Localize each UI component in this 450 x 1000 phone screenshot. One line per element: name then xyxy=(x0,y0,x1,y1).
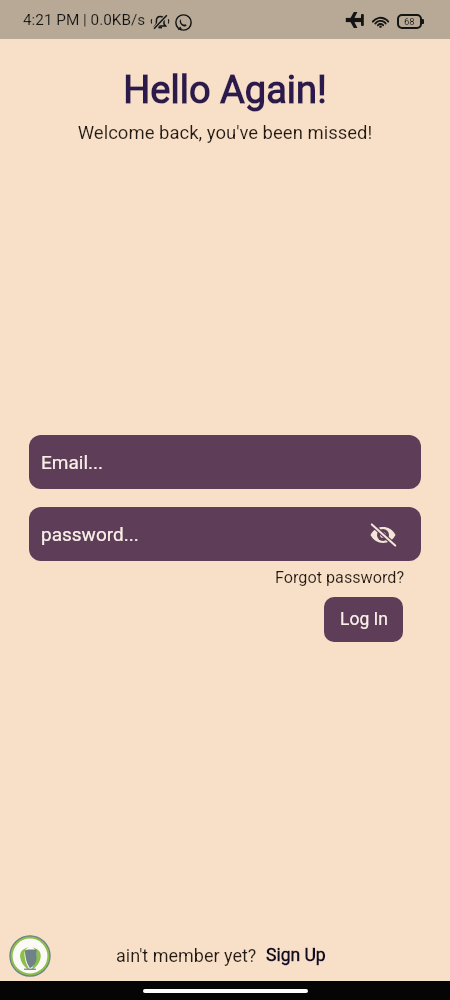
staticText: Forgot password? xyxy=(275,568,405,587)
button[interactable]: password... xyxy=(29,507,421,561)
button[interactable]: Sign Up xyxy=(266,945,326,966)
staticText: Hello Again! xyxy=(0,68,450,113)
staticText: Log In xyxy=(340,609,388,630)
staticText: Welcome back, you've been missed! xyxy=(0,122,450,144)
button[interactable]: Email... xyxy=(29,435,421,489)
staticText: 68 xyxy=(404,16,415,27)
staticText: Email... xyxy=(41,451,104,473)
staticText: ain't member yet? xyxy=(116,945,257,966)
staticText: password... xyxy=(41,523,139,545)
staticText: Sign Up xyxy=(266,945,326,966)
button[interactable]: Show password xyxy=(367,519,399,551)
button[interactable]: Forgot password? xyxy=(275,568,405,587)
staticText: 4:21 PM | 0.0KB/s xyxy=(23,11,146,29)
button[interactable]: Log In xyxy=(324,597,403,642)
